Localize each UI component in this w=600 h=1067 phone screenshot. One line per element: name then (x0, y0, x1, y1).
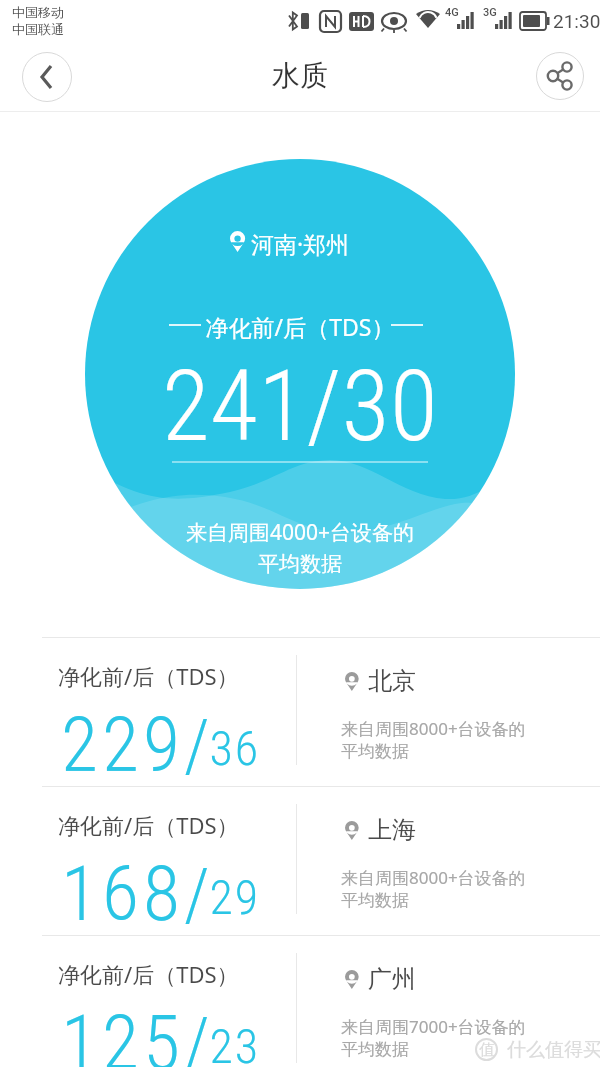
staticText: 平均数据 (341, 741, 409, 762)
staticText: 3G (483, 6, 497, 19)
staticText: 净化前/后（TDS） (58, 810, 239, 840)
staticText: 241/30 (0, 349, 600, 464)
staticText: 什么值得买 (507, 1038, 600, 1062)
staticText: 来自周围8000+台设备的 (341, 717, 526, 740)
staticText: 来自周围4000+台设备的 (0, 518, 600, 547)
button[interactable]: 净化前/后（TDS） (0, 786, 600, 935)
staticText: 上海 (368, 815, 416, 845)
staticText: 北京 (368, 666, 416, 696)
staticText: 中国联通 (12, 21, 64, 37)
staticText: 河南·郑州 (0, 228, 600, 259)
staticText: 净化前/后（TDS） (58, 959, 239, 989)
staticText: 值 (479, 1040, 495, 1060)
staticText: 168/29 (61, 849, 261, 938)
button[interactable] (536, 52, 584, 100)
staticText: 平均数据 (0, 551, 600, 577)
staticText: 平均数据 (341, 890, 409, 911)
staticText: 125/23 (61, 998, 261, 1067)
staticText: 229/36 (61, 700, 261, 789)
staticText: 净化前/后（TDS） (0, 311, 600, 342)
staticText: 水质 (0, 58, 600, 93)
staticText: 21:30 (553, 10, 600, 32)
staticText: 净化前/后（TDS） (58, 661, 239, 691)
staticText: 平均数据 (341, 1039, 409, 1060)
staticText: 4G (445, 6, 459, 19)
button[interactable]: 净化前/后（TDS） (0, 935, 600, 1067)
staticText: 来自周围8000+台设备的 (341, 866, 526, 889)
staticText: 广州 (368, 964, 416, 994)
button[interactable]: 净化前/后（TDS） (0, 637, 600, 786)
staticText: 来自周围7000+台设备的 (341, 1015, 526, 1038)
staticText: 中国移动 (12, 4, 64, 20)
button[interactable] (22, 52, 72, 102)
